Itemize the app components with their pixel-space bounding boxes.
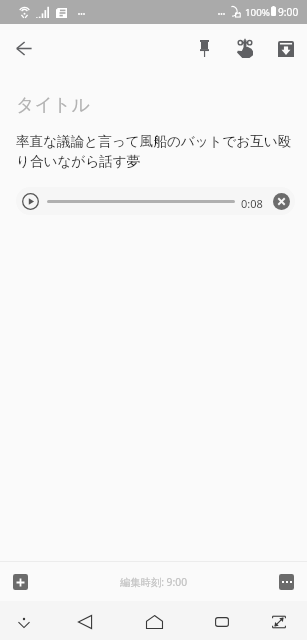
button[interactable]: Delete recording <box>269 189 293 213</box>
staticText: タイトル <box>16 94 90 116</box>
staticText: 100% <box>245 6 270 19</box>
button[interactable]: Hide keyboard <box>2 603 46 640</box>
button[interactable]: Play recording <box>18 189 42 213</box>
staticText: 率直な議論と言って風船のバットでお互い殴り合いながら話す夢 <box>16 133 301 170</box>
button[interactable]: Pin note <box>184 29 224 67</box>
staticText: 9:00 <box>278 5 299 19</box>
button[interactable]: Archive <box>266 30 306 68</box>
button[interactable]: Back <box>63 602 107 640</box>
button[interactable]: Recent apps <box>200 602 244 640</box>
button[interactable]: Back <box>4 29 44 67</box>
button[interactable]: Home <box>132 602 176 640</box>
button[interactable]: Add <box>13 574 28 590</box>
staticText: 編集時刻: 9:00 <box>120 575 188 589</box>
staticText: 0:08 <box>241 196 263 211</box>
button[interactable]: Full screen <box>257 602 301 640</box>
button[interactable]: More options <box>279 574 294 590</box>
button[interactable]: Reminder <box>225 29 265 67</box>
